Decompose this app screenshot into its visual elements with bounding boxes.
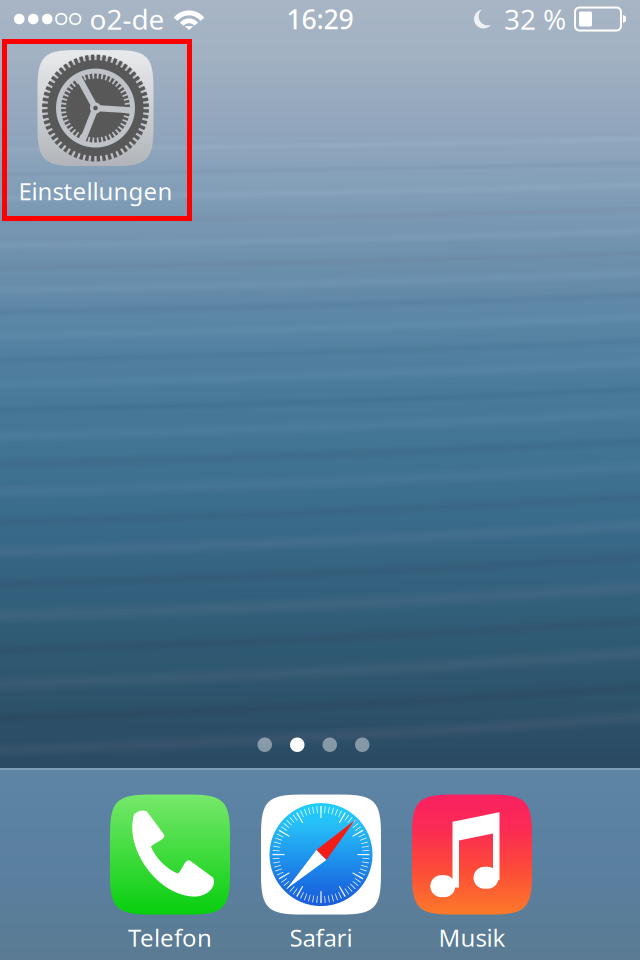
staticText: o2-de (89, 0, 164, 38)
staticText: 32 % (504, 0, 566, 38)
button[interactable]: Einstellungen (5, 42, 185, 214)
staticText: Safari (289, 922, 352, 953)
button[interactable]: Musik (412, 795, 532, 953)
button[interactable]: Safari (261, 795, 381, 953)
button[interactable]: Telefon (110, 795, 230, 953)
staticText: Einstellungen (18, 175, 172, 207)
staticText: Telefon (128, 922, 212, 953)
staticText: 16:29 (286, 1, 353, 37)
staticText: Musik (438, 922, 505, 953)
